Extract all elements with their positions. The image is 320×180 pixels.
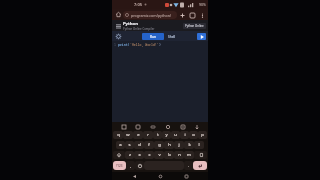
- button[interactable]: Run: [142, 33, 164, 40]
- button[interactable]: Python Online: [183, 23, 206, 29]
- staticText: print(: [118, 43, 130, 47]
- button[interactable]: Home: [156, 172, 164, 180]
- staticText: t: [157, 132, 159, 138]
- staticText: g: [158, 142, 161, 148]
- staticText: Python: [123, 21, 138, 27]
- button[interactable]: Emoji: [135, 161, 144, 170]
- staticText: ,: [130, 163, 132, 168]
- staticText: Python Online Compiler: [123, 27, 155, 31]
- staticText: v: [158, 152, 161, 158]
- staticText: y: [165, 132, 168, 138]
- button[interactable]: Enter: [193, 161, 207, 170]
- staticText: d: [138, 142, 141, 148]
- staticText: Shell: [168, 35, 176, 39]
- staticText: u: [174, 132, 177, 138]
- staticText: Run: [150, 35, 157, 39]
- button[interactable]: n: [174, 151, 184, 159]
- button[interactable]: Keyboard tool 2: [134, 123, 141, 130]
- button[interactable]: Keyboard tool 6: [193, 123, 200, 130]
- button[interactable]: programiz.com/python/: [123, 11, 177, 19]
- button[interactable]: g: [154, 141, 164, 149]
- button[interactable]: b: [164, 151, 174, 159]
- button[interactable]: f: [144, 141, 154, 149]
- staticText: p: [201, 132, 204, 138]
- staticText: f: [148, 142, 150, 148]
- button[interactable]: p: [198, 131, 207, 139]
- button[interactable]: z: [125, 151, 134, 159]
- staticText: n: [178, 152, 181, 158]
- button[interactable]: Expand output: [197, 33, 206, 40]
- staticText: a: [119, 142, 122, 148]
- button[interactable]: h: [164, 141, 174, 149]
- button[interactable]: q: [113, 131, 123, 139]
- staticText: h: [168, 142, 171, 148]
- button[interactable]: r: [143, 131, 153, 139]
- staticText: m: [187, 152, 191, 158]
- staticText: 1: [114, 43, 116, 47]
- button[interactable]: Menu: [112, 20, 208, 31]
- staticText: ?123: [116, 164, 123, 168]
- button[interactable]: ?123: [113, 161, 126, 170]
- staticText: b: [168, 152, 171, 158]
- button[interactable]: Home: [114, 10, 123, 19]
- staticText: o: [192, 132, 195, 138]
- button[interactable]: Comma: [126, 161, 135, 170]
- button[interactable]: u: [171, 131, 180, 139]
- button[interactable]: Recent apps: [182, 172, 190, 180]
- button[interactable]: Keyboard tool 5: [179, 123, 186, 130]
- staticText: z: [129, 152, 131, 158]
- button[interactable]: Shell: [167, 33, 177, 40]
- button[interactable]: a: [116, 141, 125, 149]
- staticText: k: [188, 142, 191, 148]
- staticText: 90%: [199, 2, 206, 7]
- button[interactable]: Keyboard tool 1: [120, 123, 127, 130]
- staticText: 7:05: [134, 2, 142, 7]
- button[interactable]: w: [123, 131, 133, 139]
- button[interactable]: Keyboard tool 4: [164, 123, 171, 130]
- button[interactable]: e: [133, 131, 143, 139]
- button[interactable]: o: [189, 131, 198, 139]
- button[interactable]: Settings: [114, 32, 122, 40]
- button[interactable]: s: [125, 141, 134, 149]
- staticText: s: [128, 142, 131, 148]
- staticText: ): [159, 43, 161, 47]
- staticText: c: [148, 152, 151, 158]
- staticText: .: [188, 163, 190, 168]
- button[interactable]: y: [162, 131, 171, 139]
- button[interactable]: d: [134, 141, 144, 149]
- button[interactable]: t: [153, 131, 162, 139]
- button[interactable]: Period: [184, 161, 193, 170]
- staticText: l: [198, 142, 200, 148]
- staticText: q: [117, 132, 120, 138]
- button[interactable]: Menu: [114, 22, 122, 30]
- button[interactable]: j: [174, 141, 184, 149]
- staticText: x: [138, 152, 141, 158]
- button[interactable]: v: [154, 151, 164, 159]
- staticText: 'Hello, World!': [130, 43, 159, 47]
- button[interactable]: Backspace: [194, 151, 207, 159]
- staticText: e: [137, 132, 140, 138]
- button[interactable]: i: [180, 131, 189, 139]
- button[interactable]: Keyboard tool 3: [149, 123, 156, 130]
- button[interactable]: x: [134, 151, 144, 159]
- button[interactable]: k: [184, 141, 194, 149]
- button[interactable]: Back: [130, 172, 138, 180]
- staticText: w: [126, 132, 130, 138]
- staticText: Python Online: [185, 24, 204, 28]
- button[interactable]: m: [184, 151, 194, 159]
- button[interactable]: Tabs: [187, 10, 197, 20]
- staticText: programiz.com/python/: [131, 13, 172, 18]
- button[interactable]: Shift: [113, 151, 125, 159]
- staticText: i: [184, 132, 186, 138]
- staticText: r: [147, 132, 149, 138]
- button[interactable]: c: [144, 151, 154, 159]
- button[interactable]: l: [194, 141, 204, 149]
- button[interactable]: New tab: [177, 10, 187, 20]
- button[interactable]: More options: [197, 10, 207, 20]
- staticText: j: [178, 142, 180, 148]
